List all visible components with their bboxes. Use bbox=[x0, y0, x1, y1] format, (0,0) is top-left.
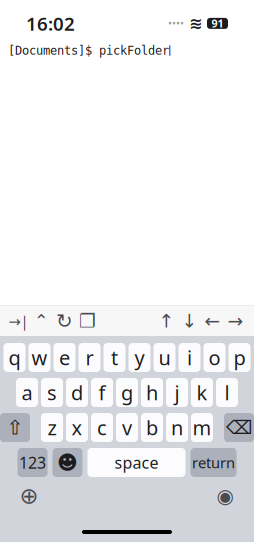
staticText: →| bbox=[8, 311, 28, 331]
staticText: •••• bbox=[168, 16, 184, 30]
staticText: ☻ bbox=[57, 451, 78, 474]
button[interactable]: Shift bbox=[0, 413, 30, 442]
button[interactable]: w bbox=[28, 343, 50, 372]
button[interactable]: x bbox=[66, 413, 88, 442]
button[interactable]: i bbox=[178, 343, 200, 372]
staticText: i bbox=[187, 344, 192, 371]
button[interactable]: m bbox=[191, 413, 213, 442]
staticText: z bbox=[47, 414, 56, 441]
button[interactable]: s bbox=[41, 378, 63, 407]
button[interactable]: t bbox=[103, 343, 125, 372]
staticText: l bbox=[224, 379, 229, 406]
button[interactable]: k bbox=[191, 378, 213, 407]
button[interactable]: Right bbox=[225, 310, 246, 332]
button[interactable]: e bbox=[53, 343, 75, 372]
staticText: → bbox=[227, 310, 243, 332]
staticText: [Documents]$ pickFolder bbox=[8, 44, 169, 57]
staticText: ❐ bbox=[79, 310, 96, 332]
staticText: b bbox=[146, 414, 158, 441]
button[interactable]: Delete bbox=[224, 413, 254, 442]
button[interactable]: Control bbox=[31, 310, 52, 332]
button[interactable]: v bbox=[116, 413, 138, 442]
staticText: ⌃ bbox=[34, 311, 49, 331]
button[interactable]: q bbox=[3, 343, 25, 372]
staticText: ⊕ bbox=[19, 483, 38, 509]
staticText: ↓ bbox=[181, 310, 197, 332]
button[interactable]: h bbox=[141, 378, 163, 407]
staticText: ≋ bbox=[189, 14, 202, 32]
staticText: g bbox=[121, 379, 133, 406]
staticText: m bbox=[192, 414, 211, 441]
button[interactable]: n bbox=[166, 413, 188, 442]
button[interactable]: l bbox=[216, 378, 238, 407]
staticText: d bbox=[71, 379, 83, 406]
staticText: return bbox=[192, 453, 235, 472]
staticText: v bbox=[122, 414, 132, 441]
staticText: u bbox=[158, 344, 170, 371]
staticText: ↻ bbox=[56, 310, 73, 332]
staticText: ↑ bbox=[158, 310, 174, 332]
button[interactable]: space bbox=[87, 448, 185, 477]
staticText: t bbox=[111, 344, 118, 371]
staticText: 16:02 bbox=[26, 11, 75, 36]
button[interactable]: Next keyboard bbox=[16, 483, 42, 509]
staticText: ⌫ bbox=[226, 417, 252, 438]
staticText: h bbox=[146, 379, 158, 406]
button[interactable]: a bbox=[16, 378, 38, 407]
button[interactable]: Paste bbox=[77, 310, 98, 332]
staticText: j bbox=[174, 379, 179, 406]
button[interactable]: y bbox=[128, 343, 150, 372]
staticText: q bbox=[8, 344, 20, 371]
staticText: 123 bbox=[19, 452, 46, 473]
staticText: k bbox=[196, 379, 207, 406]
staticText: f bbox=[98, 379, 105, 406]
button[interactable]: Up bbox=[156, 310, 177, 332]
button[interactable]: History bbox=[54, 310, 75, 332]
button[interactable]: return bbox=[190, 448, 236, 477]
button[interactable]: o bbox=[203, 343, 225, 372]
staticText: e bbox=[59, 344, 70, 371]
staticText: ← bbox=[204, 310, 220, 332]
button[interactable]: d bbox=[66, 378, 88, 407]
staticText: ◉ bbox=[216, 485, 233, 507]
staticText: ⇧ bbox=[6, 416, 23, 439]
button[interactable]: f bbox=[91, 378, 113, 407]
staticText: 91 bbox=[211, 16, 223, 30]
staticText: p bbox=[233, 344, 245, 371]
button[interactable]: c bbox=[91, 413, 113, 442]
staticText: x bbox=[71, 414, 82, 441]
button[interactable]: j bbox=[166, 378, 188, 407]
staticText: c bbox=[97, 414, 107, 441]
button[interactable]: Down bbox=[179, 310, 200, 332]
button[interactable]: Left bbox=[202, 310, 223, 332]
staticText: a bbox=[21, 379, 32, 406]
staticText: space bbox=[114, 452, 158, 473]
staticText: o bbox=[208, 344, 220, 371]
button[interactable]: Dictation bbox=[212, 483, 238, 509]
button[interactable]: u bbox=[153, 343, 175, 372]
button[interactable]: z bbox=[41, 413, 63, 442]
button[interactable]: g bbox=[116, 378, 138, 407]
staticText: r bbox=[85, 344, 93, 371]
button[interactable]: Emoji bbox=[52, 448, 82, 477]
staticText: w bbox=[31, 344, 47, 371]
button[interactable]: p bbox=[228, 343, 250, 372]
button[interactable]: r bbox=[78, 343, 100, 372]
button[interactable]: 123 bbox=[17, 448, 47, 477]
button[interactable]: b bbox=[141, 413, 163, 442]
staticText: y bbox=[134, 344, 144, 371]
button[interactable]: Tab bbox=[8, 310, 29, 332]
staticText: s bbox=[47, 379, 57, 406]
staticText: n bbox=[171, 414, 183, 441]
